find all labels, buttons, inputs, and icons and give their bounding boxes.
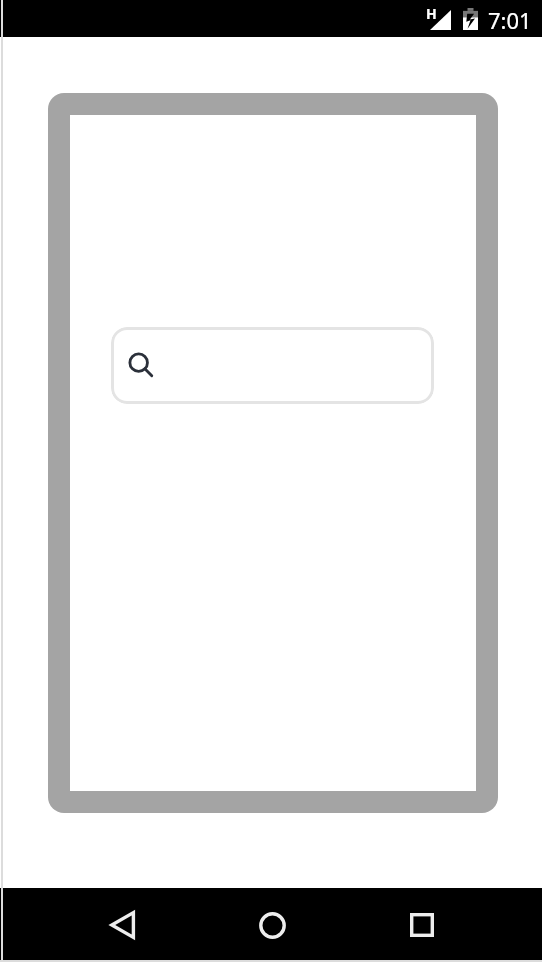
button[interactable]: Search (111, 327, 434, 404)
staticText: H (426, 4, 437, 23)
button[interactable]: Recents (392, 888, 452, 962)
staticText: 7:01 (488, 5, 532, 35)
button[interactable]: Home (242, 888, 302, 962)
button[interactable]: Back (92, 888, 152, 962)
other: Search (128, 352, 155, 379)
